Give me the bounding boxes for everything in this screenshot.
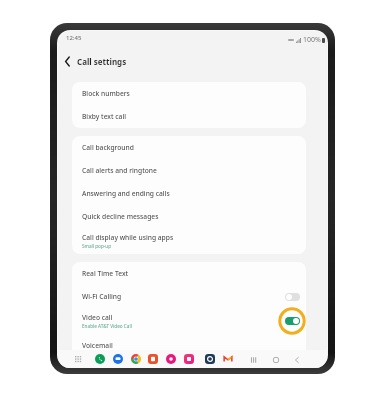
button[interactable]: Files (148, 354, 158, 364)
button[interactable]: T Mobile (166, 354, 176, 364)
button[interactable]: Bixby text call (72, 105, 306, 128)
button[interactable]: All apps (73, 354, 83, 364)
staticText: Call background (82, 143, 134, 152)
button[interactable]: Camera (205, 354, 215, 364)
staticText: Quick decline messages (82, 212, 159, 221)
staticText: Call settings (77, 56, 127, 67)
button[interactable]: Turn off (278, 308, 306, 334)
staticText: Call alerts and ringtone (82, 166, 157, 175)
button[interactable]: Video call (72, 308, 306, 334)
button[interactable]: Real Time Text (72, 262, 306, 285)
button[interactable]: Answering and ending calls (72, 182, 306, 205)
staticText: Answering and ending calls (82, 189, 170, 198)
staticText: 12:45 (66, 34, 82, 42)
staticText: Voicemail (82, 341, 113, 350)
staticText: Video call (82, 313, 113, 322)
staticText: Call display while using apps (82, 233, 174, 242)
staticText: Bixby text call (82, 112, 127, 121)
button[interactable]: Call display while using apps (72, 228, 306, 254)
button[interactable]: Instagram (184, 354, 194, 364)
staticText: Wi-Fi Calling (82, 292, 122, 301)
button[interactable]: Voicemail (72, 334, 306, 357)
button[interactable]: Messages (113, 354, 123, 364)
staticText: Block numbers (82, 89, 130, 98)
staticText: Small pop-up (82, 243, 112, 249)
button[interactable]: Navigate up (58, 52, 76, 70)
staticText: Real Time Text (82, 269, 129, 278)
button[interactable]: Phone (95, 354, 105, 364)
staticText: Enable AT&T Video Call (82, 323, 132, 329)
button[interactable]: Recent apps (249, 355, 259, 365)
button[interactable]: Call background (72, 136, 306, 159)
button[interactable]: Quick decline messages (72, 205, 306, 228)
button[interactable]: Wi-Fi Calling (72, 285, 306, 308)
staticText: 100% (303, 35, 321, 45)
button[interactable]: Home (271, 355, 281, 365)
button[interactable]: Chrome (131, 354, 141, 364)
button[interactable]: Back (292, 355, 302, 365)
button[interactable]: Call alerts and ringtone (72, 159, 306, 182)
button[interactable]: Gmail (223, 354, 233, 364)
button[interactable]: Turn on (278, 285, 306, 308)
button[interactable]: Block numbers (72, 82, 306, 105)
